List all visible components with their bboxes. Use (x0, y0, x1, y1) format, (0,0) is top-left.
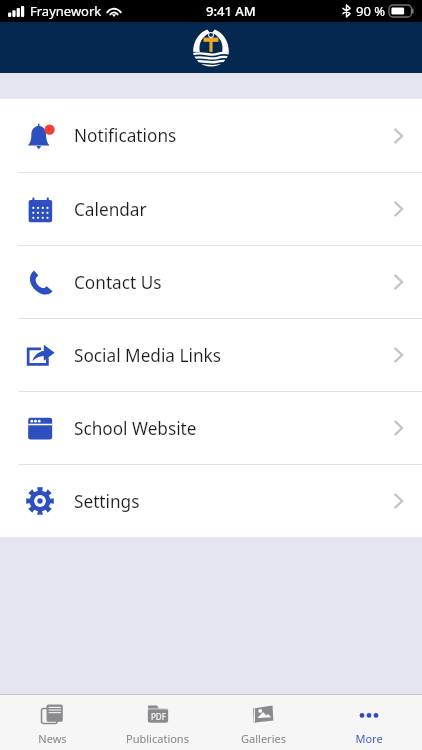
staticText: 9:41 AM (206, 2, 256, 20)
button[interactable]: Calendar (0, 173, 422, 245)
staticText: Calendar (74, 198, 147, 221)
staticText: 90 % (356, 2, 386, 20)
staticText: News (38, 731, 67, 746)
button[interactable]: News (0, 695, 105, 750)
staticText: Galleries (241, 731, 286, 746)
button[interactable]: Settings (0, 465, 422, 537)
staticText: PDF (151, 711, 166, 722)
staticText: More (355, 731, 383, 746)
button[interactable]: School Website (0, 392, 422, 464)
button[interactable]: Notifications (0, 99, 422, 172)
button[interactable]: More (316, 695, 422, 750)
staticText: Fraynework (30, 2, 102, 20)
button[interactable]: Social Media Links (0, 319, 422, 391)
staticText: Publications (126, 731, 189, 746)
staticText: Notifications (74, 124, 177, 147)
button[interactable]: PDF (105, 695, 210, 750)
staticText: Settings (74, 490, 140, 513)
staticText: Social Media Links (74, 344, 221, 367)
button[interactable]: Contact Us (0, 246, 422, 318)
button[interactable]: Galleries (210, 695, 316, 750)
staticText: School Website (74, 417, 197, 440)
staticText: Contact Us (74, 271, 162, 294)
